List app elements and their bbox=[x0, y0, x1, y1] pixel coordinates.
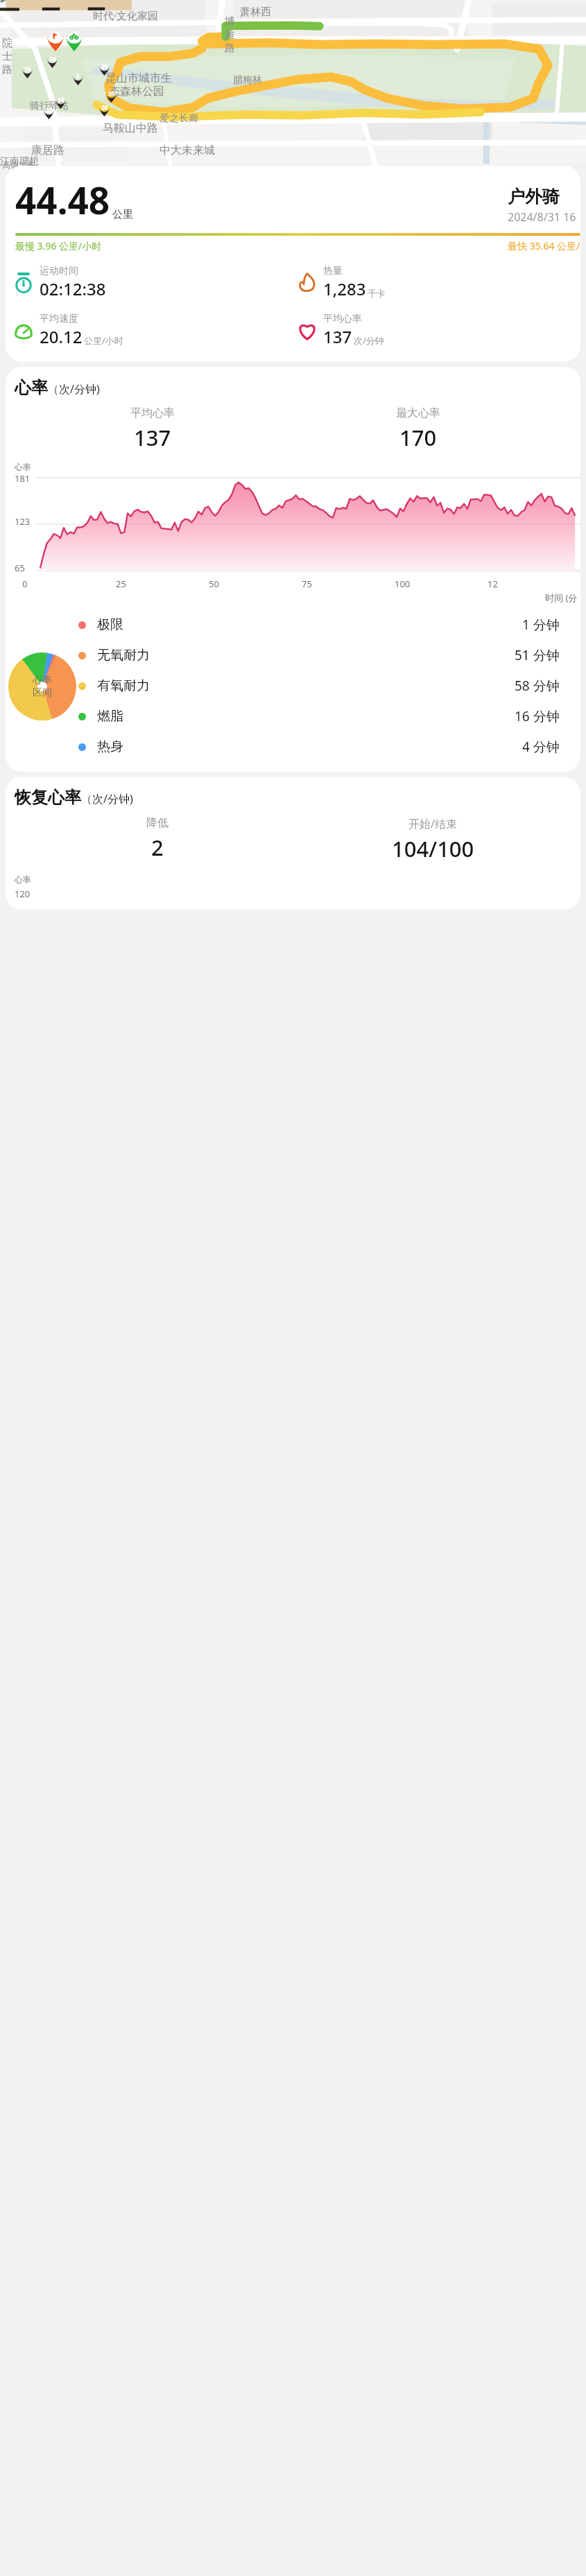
staticText: 降低 bbox=[146, 816, 169, 830]
staticText: 热量 bbox=[323, 265, 343, 277]
staticText: 运动时间 bbox=[40, 265, 78, 277]
staticText: 50 bbox=[209, 578, 302, 590]
staticText: 最大心率 bbox=[396, 406, 440, 420]
staticText: 高德地图 bbox=[2, 159, 35, 170]
button[interactable]: 热身 bbox=[78, 732, 580, 762]
staticText: 路 bbox=[2, 63, 12, 76]
staticText: 户外骑 bbox=[508, 186, 560, 207]
button[interactable]: 燃脂 bbox=[78, 701, 580, 732]
staticText: 平均心率 bbox=[323, 313, 362, 325]
staticText: 开始/结束 bbox=[408, 816, 457, 831]
staticText: 170 bbox=[399, 423, 437, 452]
staticText: 康居路 bbox=[31, 144, 64, 157]
button[interactable]: 无氧耐力 bbox=[78, 640, 580, 671]
staticText: 137 bbox=[323, 325, 352, 348]
staticText: 25 bbox=[116, 578, 209, 590]
staticText: 20.12 bbox=[40, 325, 83, 348]
staticText: 院 bbox=[2, 37, 12, 50]
staticText: 44.48 bbox=[15, 175, 110, 225]
staticText: 腊梅林 bbox=[233, 74, 262, 87]
staticText: 千卡 bbox=[368, 288, 386, 299]
staticText: 4 分钟 bbox=[522, 738, 560, 756]
button[interactable]: 极限 bbox=[78, 610, 580, 640]
staticText: 30 bbox=[101, 103, 108, 112]
staticText: 无氧耐力 bbox=[97, 647, 515, 664]
button[interactable]: 平均心率 bbox=[296, 311, 580, 349]
staticText: 0 bbox=[22, 578, 116, 590]
staticText: 时代·文化家园 bbox=[93, 8, 159, 22]
staticText: 骑行驿站 bbox=[30, 100, 69, 112]
staticText: 态森林公园 bbox=[109, 85, 164, 98]
staticText: 有氧耐力 bbox=[97, 677, 515, 694]
staticText: 次/分钟 bbox=[354, 334, 384, 347]
staticText: 15 bbox=[24, 65, 31, 74]
staticText: 昆山市城市生 bbox=[105, 71, 172, 85]
staticText: 58 分钟 bbox=[515, 677, 560, 695]
staticText: 1,283 bbox=[323, 277, 366, 300]
staticText: 最快 35.64 公里/ bbox=[508, 239, 580, 252]
button[interactable]: 运动时间 bbox=[12, 263, 296, 302]
staticText: 中大未来城 bbox=[160, 144, 215, 157]
staticText: 1 分钟 bbox=[522, 616, 560, 634]
button[interactable]: 有氧耐力 bbox=[78, 671, 580, 701]
staticText: 爱之长廊 bbox=[160, 112, 198, 125]
staticText: 51 分钟 bbox=[515, 646, 560, 664]
staticText: 平均速度 bbox=[40, 313, 78, 325]
staticText: 极限 bbox=[97, 616, 522, 633]
staticText: 25 bbox=[101, 62, 108, 71]
staticText: 120 bbox=[15, 888, 31, 900]
staticText: 2 bbox=[151, 833, 164, 862]
staticText: 心率 bbox=[15, 462, 31, 472]
staticText: 平均心率 bbox=[130, 406, 175, 420]
staticText: 恢复心率 bbox=[15, 787, 81, 808]
staticText: 2024/8/31 16 bbox=[508, 209, 576, 225]
button[interactable]: 平均速度 bbox=[12, 311, 296, 349]
staticText: 萧林西 bbox=[240, 6, 271, 19]
button[interactable]: 热量 bbox=[296, 263, 580, 302]
staticText: 雅 bbox=[225, 28, 235, 42]
staticText: 心率 bbox=[15, 377, 48, 398]
staticText: 区间 bbox=[33, 686, 52, 699]
staticText: 100 bbox=[395, 578, 488, 590]
staticText: 16 分钟 bbox=[515, 707, 560, 725]
staticText: 公里 bbox=[112, 208, 133, 221]
staticText: 20 bbox=[49, 55, 56, 63]
staticText: 心率 bbox=[15, 874, 31, 885]
staticText: 燃脂 bbox=[97, 708, 515, 725]
staticText: 马鞍山中路 bbox=[103, 121, 158, 135]
staticText: 35 bbox=[108, 89, 115, 98]
staticText: 75 bbox=[302, 578, 395, 590]
staticText: 士 bbox=[2, 50, 12, 63]
staticText: 12 bbox=[488, 578, 580, 590]
staticText: 123 bbox=[15, 515, 31, 528]
staticText: （次/分钟) bbox=[48, 381, 100, 397]
staticText: 137 bbox=[134, 423, 171, 452]
staticText: 10 bbox=[46, 106, 53, 114]
staticText: 65 bbox=[15, 562, 25, 574]
staticText: 心率 bbox=[33, 674, 52, 686]
staticText: 博 bbox=[225, 15, 235, 28]
staticText: 40 bbox=[58, 96, 64, 104]
staticText: 最慢 3.96 公里/小时 bbox=[15, 239, 102, 252]
staticText: 江南理想 bbox=[0, 155, 39, 168]
staticText: 路 bbox=[225, 42, 235, 55]
staticText: 02:12:38 bbox=[40, 277, 106, 300]
staticText: 时间 (分 bbox=[545, 591, 578, 604]
staticText: 5 bbox=[76, 72, 80, 80]
staticText: 公里/小时 bbox=[84, 334, 123, 347]
staticText: （次/分钟) bbox=[81, 791, 133, 806]
staticText: 热身 bbox=[97, 738, 522, 755]
staticText: 104/100 bbox=[392, 834, 474, 863]
staticText: 181 bbox=[15, 472, 31, 485]
